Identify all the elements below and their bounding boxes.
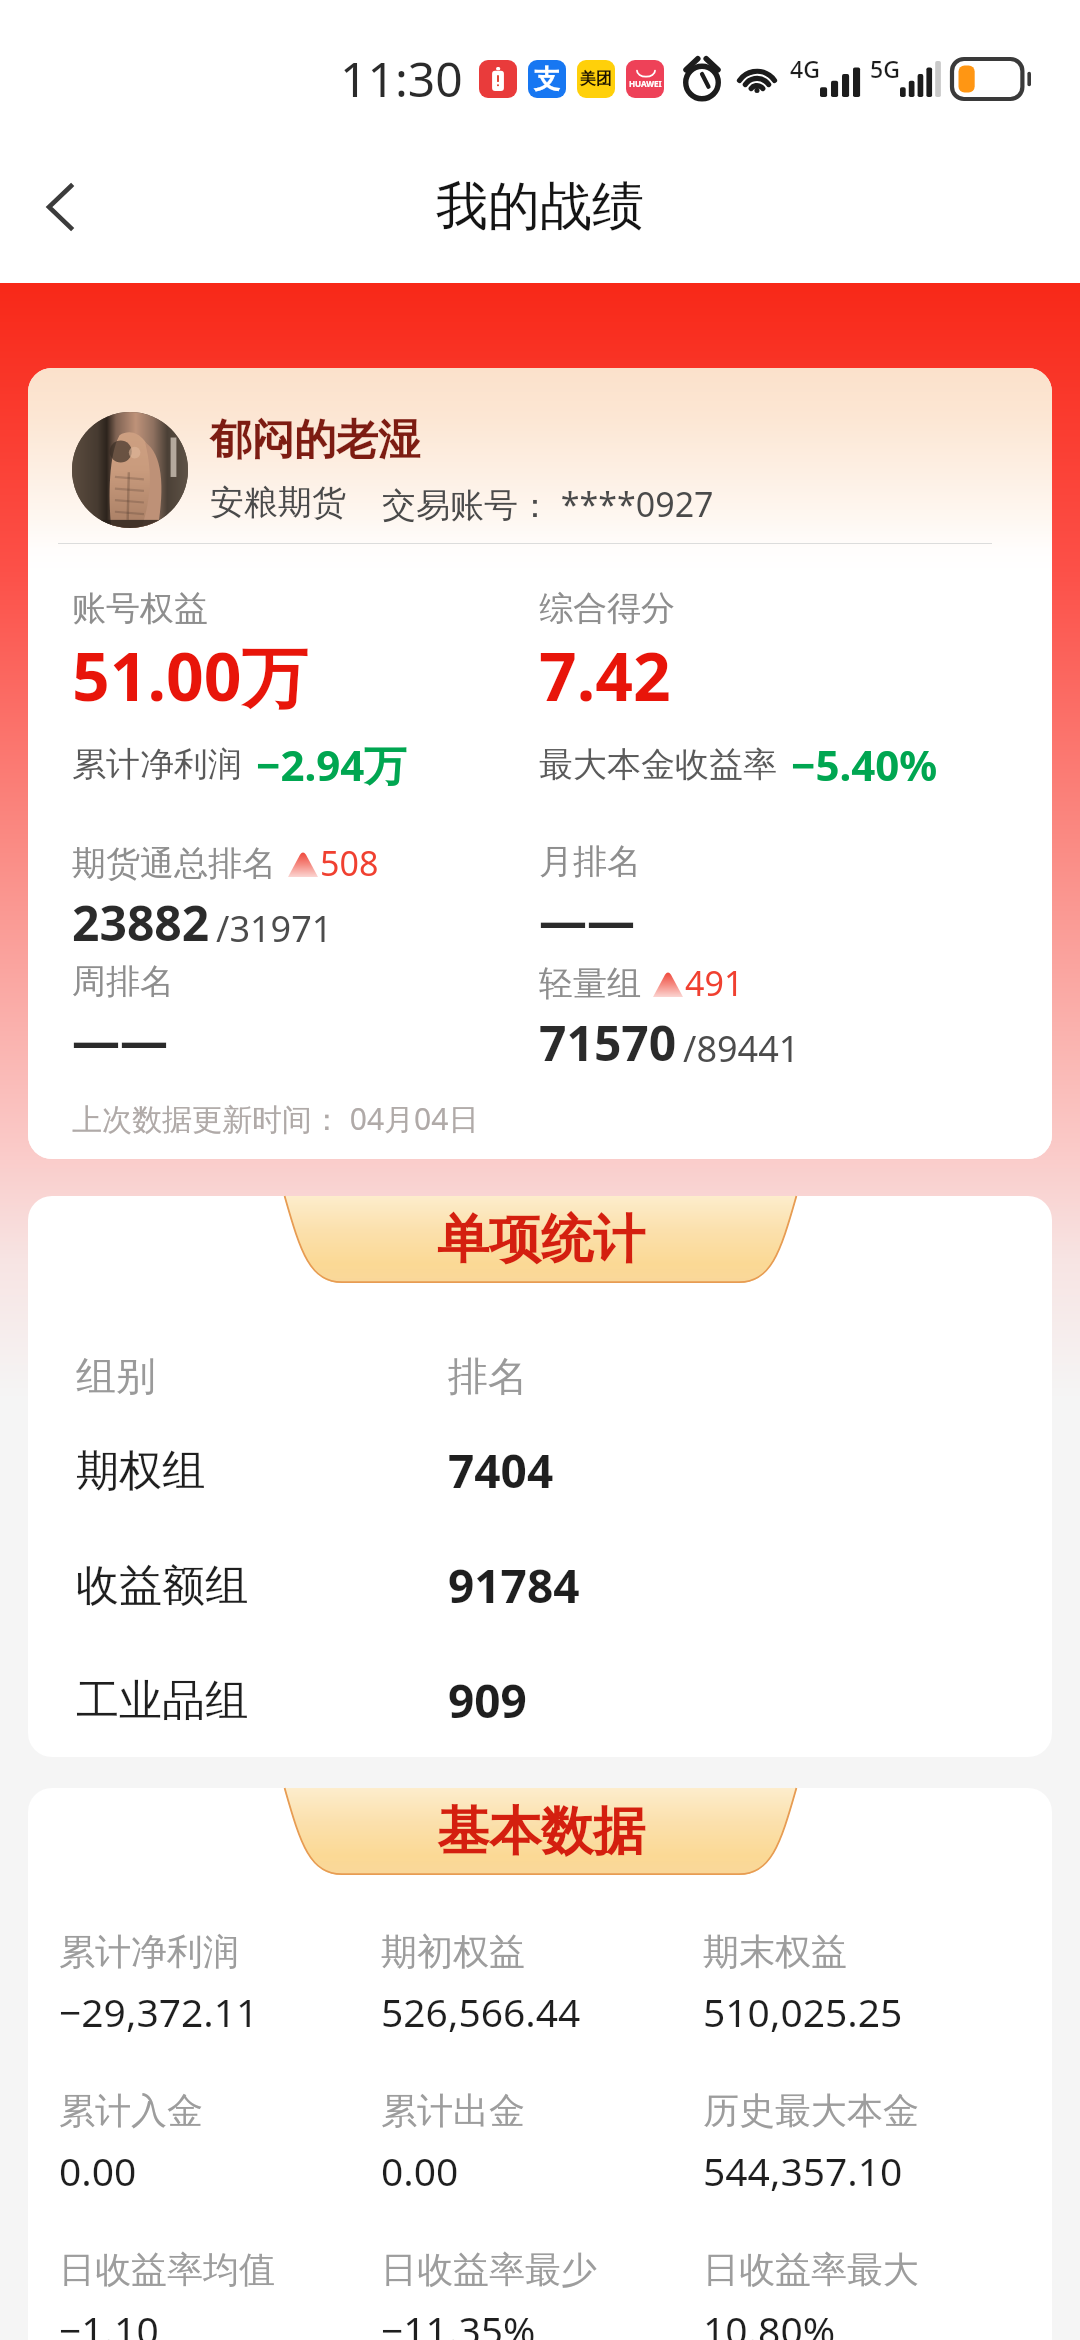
staticText: 累计入金 [59, 2088, 203, 2133]
staticText: −5.40% [791, 736, 938, 793]
staticText: 历史最大本金 [703, 2088, 919, 2133]
staticText: 526,566.44 [381, 1985, 581, 2038]
staticText: 期货通总排名 [72, 842, 276, 885]
staticText: 544,357.10 [703, 2144, 903, 2197]
staticText: 累计净利润 [72, 743, 242, 786]
staticText: −11.35% [381, 2303, 536, 2340]
staticText: /31971 [216, 904, 333, 953]
staticText: 23882 [72, 890, 210, 955]
staticText: 交易账号： ****0927 [382, 481, 714, 527]
staticText: 最大本金收益率 [539, 743, 777, 786]
staticText: 账号权益 [72, 587, 208, 630]
staticText: 0.00 [59, 2144, 137, 2197]
staticText: 11:30 [340, 46, 463, 111]
staticText: 7404 [448, 1439, 554, 1502]
staticText: 基本数据 [437, 1799, 645, 1865]
staticText: 510,025.25 [703, 1985, 903, 2038]
staticText: 单项统计 [437, 1207, 645, 1273]
staticText: 期末权益 [703, 1929, 847, 1974]
staticText: 上次数据更新时间： 04月04日 [72, 1098, 479, 1139]
staticText: 日收益率最大 [703, 2247, 919, 2292]
staticText: —— [539, 887, 636, 952]
staticText: 日收益率均值 [59, 2247, 275, 2292]
staticText: 71570 [539, 1010, 677, 1075]
staticText: 工业品组 [76, 1674, 448, 1728]
staticText: 累计净利润 [59, 1929, 239, 1974]
staticText: 综合得分 [539, 587, 675, 630]
staticText: 909 [448, 1669, 527, 1732]
staticText: 排名 [448, 1351, 528, 1401]
staticText: 郁闷的老湿 [210, 414, 420, 467]
staticText: 收益额组 [76, 1559, 448, 1613]
staticText: −2.94万 [256, 736, 407, 793]
button[interactable]: Back [22, 169, 98, 245]
staticText: 0.00 [381, 2144, 459, 2197]
staticText: 轻量组 [539, 962, 641, 1005]
staticText: 7.42 [539, 630, 671, 720]
staticText: 491 [685, 960, 744, 1006]
staticText: −29,372.11 [59, 1985, 259, 2038]
staticText: 月排名 [539, 840, 641, 883]
staticText: 51.00万 [72, 630, 308, 720]
staticText: /89441 [683, 1024, 800, 1073]
staticText: 日收益率最少 [381, 2247, 597, 2292]
staticText: 累计出金 [381, 2088, 525, 2133]
staticText: 美团 [580, 69, 612, 89]
staticText: 我的战绩 [436, 174, 644, 240]
staticText: 周排名 [72, 960, 174, 1003]
staticText: HUAWEI [629, 78, 662, 89]
staticText: 5G [870, 53, 900, 84]
staticText: 91784 [448, 1554, 580, 1617]
staticText: 组别 [76, 1351, 448, 1401]
staticText: 508 [320, 840, 379, 886]
staticText: 期初权益 [381, 1929, 525, 1974]
staticText: 4G [790, 53, 820, 84]
staticText: 期权组 [76, 1444, 448, 1498]
staticText: 安粮期货 [210, 481, 346, 524]
staticText: −1.10 [59, 2303, 159, 2340]
staticText: 支 [534, 63, 560, 96]
staticText: 10.80% [703, 2303, 836, 2340]
staticText: —— [72, 1007, 169, 1072]
